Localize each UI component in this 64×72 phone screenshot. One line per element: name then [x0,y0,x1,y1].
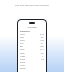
staticText: Summary [20,30,30,33]
staticText: 12G [40,39,44,42]
button[interactable]: Total [18,52,46,55]
staticText: Mar [40,45,44,48]
staticText: 31 [41,42,44,45]
staticText: Paid [20,48,25,51]
button[interactable]: Summary [18,30,46,33]
staticText: $12 [40,48,44,51]
staticText: My plan [18,25,46,28]
button[interactable]: Text [18,36,46,39]
button[interactable]: Auto [18,64,46,67]
button[interactable]: Zone [18,61,46,64]
staticText: 45 [41,52,44,55]
staticText: State [20,58,26,61]
button[interactable]: Mins [18,33,46,36]
button[interactable]: Lines [18,55,46,58]
staticText: Auto [20,64,25,67]
button[interactable]: State [18,58,46,61]
staticText: Text [20,36,25,39]
button[interactable]: Paid [18,48,46,51]
button[interactable]: Data [18,39,46,42]
staticText: Call [20,42,24,45]
button[interactable]: Bill [18,45,46,48]
staticText: Data [20,39,25,42]
staticText: 240 [40,33,44,36]
staticText: Zone [20,61,25,64]
staticText: Mins [20,33,25,36]
staticText: Call and text with one number [15,3,49,6]
staticText: Lines [20,55,26,58]
staticText: Total [20,52,25,55]
staticText: Roam [20,67,26,70]
staticText: 3 [42,55,44,58]
staticText: 86 [41,36,44,39]
staticText: On [41,58,44,61]
button[interactable]: Call [18,42,46,45]
staticText: Bill [20,45,23,48]
button[interactable]: Roam [18,67,46,70]
